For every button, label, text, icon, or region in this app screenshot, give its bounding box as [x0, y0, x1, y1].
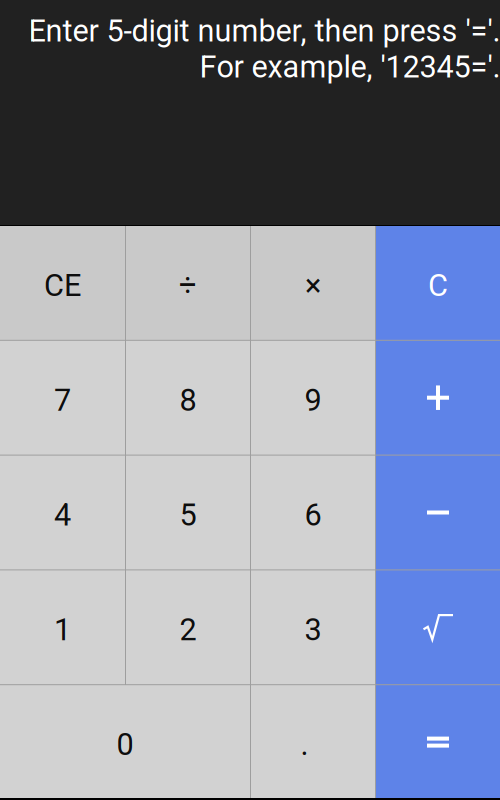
button[interactable]: × — [251, 226, 375, 340]
button[interactable]: 1 — [0, 570, 125, 684]
button[interactable]: 7 — [0, 341, 125, 455]
button[interactable]: Plus — [376, 341, 500, 455]
button[interactable]: 9 — [251, 341, 375, 455]
staticText: ÷ — [179, 267, 197, 303]
button[interactable]: Square root — [376, 570, 500, 684]
button[interactable]: 0 — [0, 685, 250, 799]
button[interactable]: 6 — [251, 456, 375, 569]
button[interactable]: 5 — [126, 456, 250, 569]
button[interactable]: ÷ — [126, 226, 250, 340]
staticText: 6 — [304, 497, 321, 533]
staticText: 2 — [179, 612, 196, 648]
button[interactable]: Equals — [376, 685, 500, 799]
staticText: 3 — [304, 612, 321, 648]
button[interactable]: 2 — [126, 570, 250, 684]
staticText: Enter 5-digit number, then press '='. Fo… — [28, 13, 500, 85]
button[interactable]: Minus — [376, 456, 500, 569]
button[interactable]: 4 — [0, 456, 125, 569]
staticText: × — [305, 267, 321, 303]
staticText: CE — [44, 267, 81, 303]
staticText: 1 — [54, 612, 71, 648]
button[interactable]: 3 — [251, 570, 375, 684]
button[interactable]: 8 — [126, 341, 250, 455]
staticText: C — [428, 267, 448, 303]
button[interactable]: . — [251, 685, 375, 799]
button[interactable]: C — [376, 226, 500, 340]
button[interactable]: CE — [0, 226, 125, 340]
staticText: 0 — [116, 727, 133, 762]
staticText: 4 — [54, 497, 71, 533]
staticText: 9 — [304, 382, 321, 418]
staticText: 7 — [54, 382, 71, 418]
staticText: . — [300, 727, 308, 762]
staticText: 5 — [179, 497, 196, 533]
staticText: 8 — [179, 382, 196, 418]
